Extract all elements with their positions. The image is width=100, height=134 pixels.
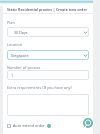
staticText: Extra requirements (If you have any) xyxy=(7,85,72,90)
staticText: Auto extend order xyxy=(13,123,45,128)
staticText: 1 xyxy=(11,73,14,78)
staticText: Number of proxies xyxy=(7,65,41,70)
staticText: Singapore xyxy=(11,53,29,58)
button[interactable]: Chat support xyxy=(83,118,93,128)
button[interactable]: 1 xyxy=(7,70,89,80)
button[interactable]: Auto extend order xyxy=(7,123,51,128)
button[interactable] xyxy=(7,94,89,116)
staticText: Location xyxy=(7,42,23,47)
button[interactable]: 30 Days xyxy=(7,27,89,37)
staticText: 30 Days xyxy=(14,30,28,35)
staticText: Static Residential proxies | Create new … xyxy=(7,7,88,12)
button[interactable]: Singapore xyxy=(7,50,89,60)
staticText: Plan xyxy=(7,20,15,25)
other: Info xyxy=(47,124,51,128)
